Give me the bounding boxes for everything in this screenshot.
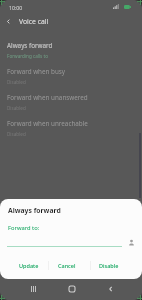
button[interactable]: Disable [94,258,124,272]
button[interactable]: Update [14,258,44,272]
staticText: Voice call [19,17,49,26]
staticText: Always forward [7,41,53,50]
staticText: 10:00 [9,4,23,11]
button[interactable]: Home [62,278,82,300]
button[interactable]: Forward when unreachable [0,117,142,143]
button[interactable]: Back [101,278,121,300]
button[interactable]: Cancel [53,258,81,272]
staticText: Cancel [58,262,76,269]
staticText: Disabled [7,131,26,137]
staticText: Disabled [7,79,26,85]
button[interactable]: Forward when busy [0,65,142,91]
staticText: Always forward [8,206,61,215]
staticText: Disabled [7,105,26,111]
button[interactable]: Recent apps [23,278,43,300]
button[interactable]: Always forward [0,39,142,65]
staticText: Forward when busy [7,67,66,76]
staticText: Update [19,262,39,269]
staticText: Forward when unanswered [7,93,88,102]
button[interactable]: Choose contact [125,236,137,248]
staticText: Forward to: [8,224,40,232]
button[interactable]: Forward when unanswered [0,91,142,117]
staticText: Forwarding calls to [7,53,48,59]
button[interactable]: Navigate up [0,13,17,30]
staticText: Forward when unreachable [7,119,88,128]
staticText: Disable [99,262,119,269]
